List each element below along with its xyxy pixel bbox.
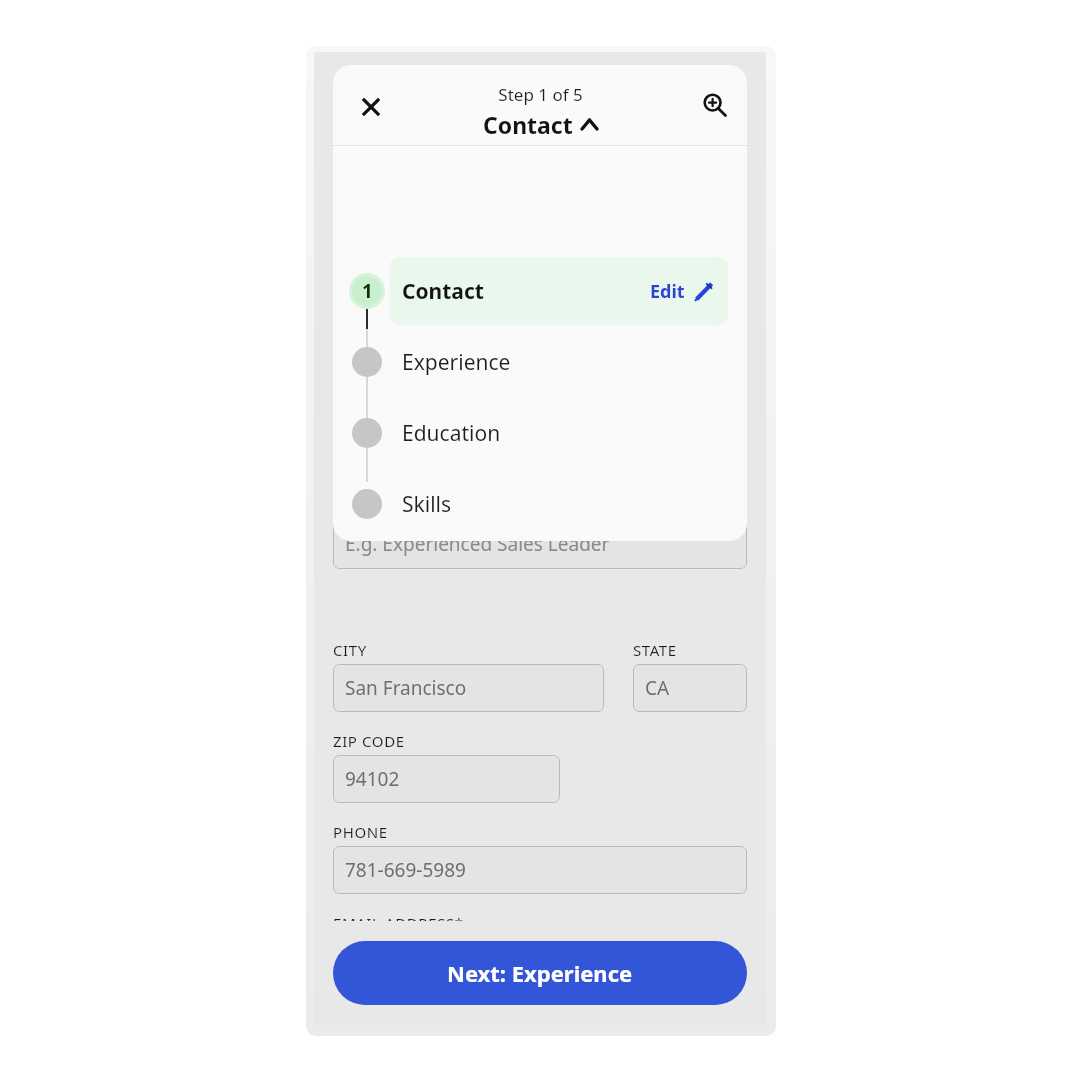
staticText: Edit: [650, 279, 685, 304]
staticText: Contact: [402, 277, 484, 306]
staticText: Education: [402, 419, 501, 448]
button[interactable]: CA: [633, 664, 747, 712]
staticText: San Francisco: [345, 675, 467, 701]
button[interactable]: 94102: [333, 755, 560, 803]
button[interactable]: Zoom in: [695, 85, 735, 125]
button[interactable]: Education: [390, 399, 728, 467]
staticText: 94102: [345, 766, 400, 792]
button[interactable]: 781-669-5989: [333, 846, 747, 894]
staticText: 1: [362, 278, 373, 304]
button[interactable]: your.email@here.com: [333, 937, 747, 985]
button[interactable]: Next: Experience: [333, 941, 747, 1005]
staticText: CA: [645, 675, 670, 701]
staticText: Skills: [402, 490, 452, 519]
button[interactable]: Close: [351, 87, 391, 127]
staticText: Next: Experience: [447, 958, 633, 988]
staticText: your.email@here.com: [345, 948, 538, 974]
button[interactable]: Step 1 of 5: [333, 83, 747, 140]
button[interactable]: Skills: [390, 470, 728, 538]
button[interactable]: Contact: [390, 257, 728, 325]
staticText: Step 1 of 5: [498, 83, 583, 106]
button[interactable]: San Francisco: [333, 664, 604, 712]
button[interactable]: E.g. Experienced Sales Leader: [333, 519, 747, 569]
staticText: 781-669-5989: [345, 857, 466, 883]
staticText: EMAIL ADDRESS*: [333, 913, 464, 933]
staticText: Contact: [483, 109, 573, 140]
staticText: PHONE: [333, 822, 388, 842]
staticText: CITY: [333, 640, 367, 660]
staticText: E.g. Experienced Sales Leader: [345, 531, 610, 557]
button[interactable]: Experience: [390, 328, 728, 396]
staticText: ZIP CODE: [333, 731, 405, 751]
staticText: Experience: [402, 348, 511, 377]
staticText: STATE: [633, 640, 677, 660]
